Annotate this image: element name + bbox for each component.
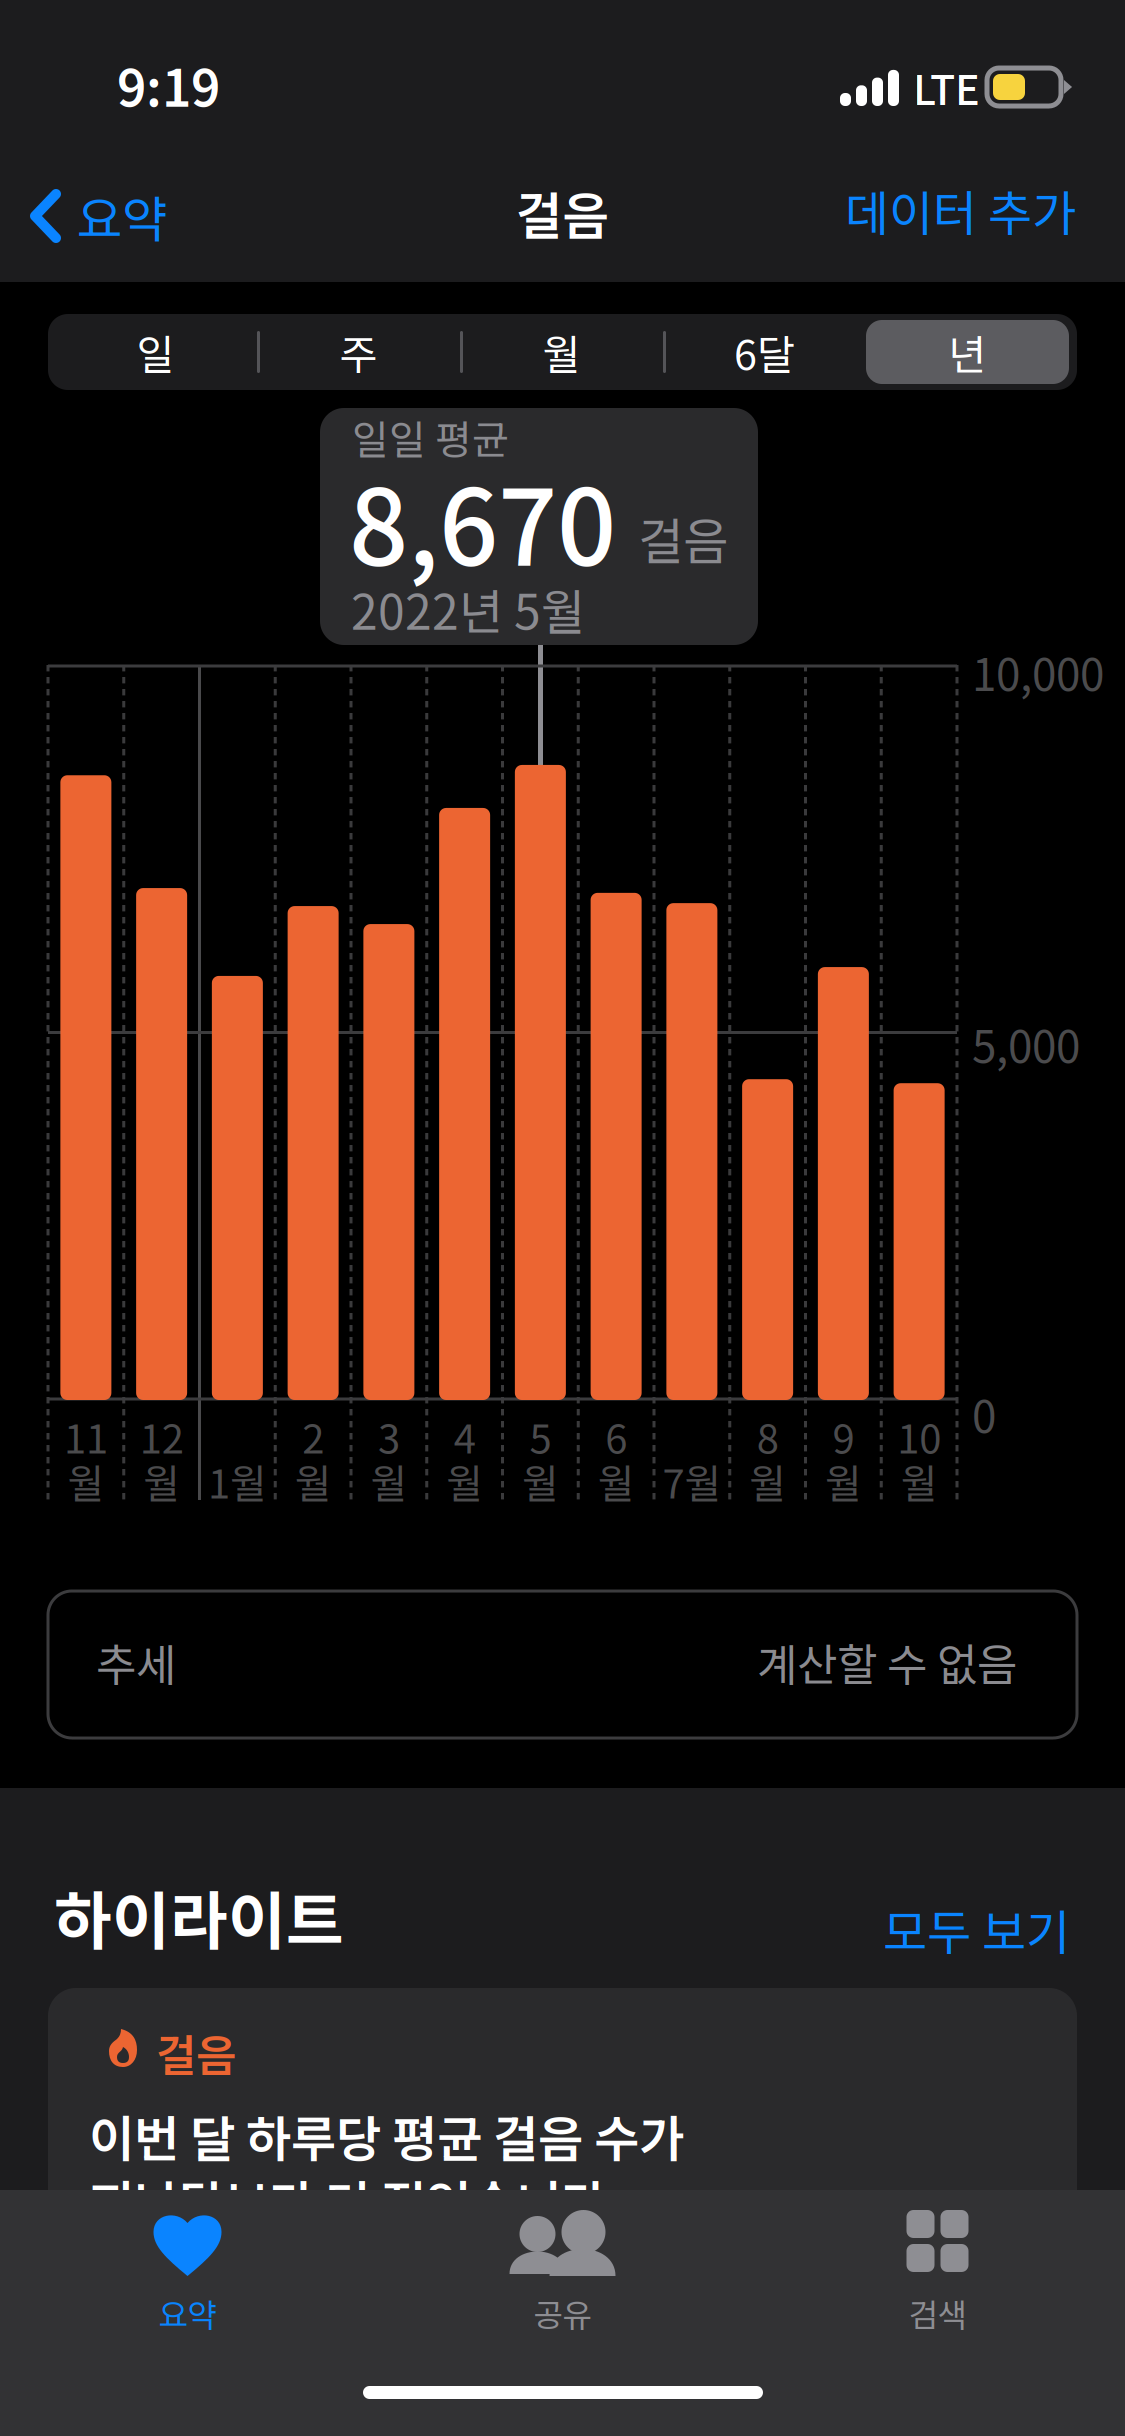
staticText: 월 bbox=[143, 1452, 180, 1510]
button[interactable]: 월 bbox=[460, 320, 663, 384]
staticText: 월 bbox=[825, 1452, 862, 1510]
staticText: 공유 bbox=[533, 2290, 591, 2336]
staticText: 11 bbox=[64, 1407, 108, 1465]
staticText: 월 bbox=[446, 1452, 483, 1510]
staticText: 9 bbox=[832, 1407, 854, 1465]
staticText: 2 bbox=[302, 1407, 324, 1465]
staticText: 일일 평균 bbox=[352, 408, 509, 466]
staticText: 일 bbox=[136, 322, 174, 382]
button[interactable]: 데이터 추가 bbox=[821, 160, 1100, 260]
staticText: 7월 bbox=[662, 1452, 721, 1510]
button[interactable]: 검색 bbox=[750, 2190, 1125, 2350]
staticText: 지난달보다 더 적었습니다. bbox=[89, 2165, 621, 2236]
staticText: 1월 bbox=[208, 1452, 267, 1510]
button[interactable]: 걸음 bbox=[48, 1988, 1077, 2318]
button[interactable]: 6달 bbox=[663, 320, 866, 384]
staticText: 2022년 5월 bbox=[351, 574, 585, 643]
staticText: 추세 bbox=[96, 1630, 176, 1694]
staticText: 6달 bbox=[734, 322, 795, 382]
staticText: 월 bbox=[542, 322, 580, 382]
staticText: 9:19 bbox=[117, 48, 220, 121]
staticText: 4 bbox=[454, 1407, 476, 1465]
staticText: 10,000 bbox=[972, 640, 1104, 704]
staticText: 6 bbox=[605, 1407, 627, 1465]
staticText: 월 bbox=[522, 1452, 559, 1510]
staticText: 걸음 bbox=[638, 502, 728, 573]
staticText: 년 bbox=[948, 322, 986, 382]
staticText: 월 bbox=[370, 1452, 407, 1510]
staticText: 모두 보기 bbox=[883, 1894, 1070, 1964]
staticText: 5,000 bbox=[972, 1012, 1080, 1076]
staticText: 3 bbox=[378, 1407, 400, 1465]
staticText: 5 bbox=[529, 1407, 551, 1465]
button[interactable]: 요약 bbox=[0, 2190, 375, 2350]
staticText: 월 bbox=[295, 1452, 332, 1510]
button[interactable]: 요약 bbox=[14, 166, 181, 266]
button[interactable]: 모두 보기 bbox=[859, 1884, 1094, 1974]
staticText: 요약 bbox=[158, 2290, 216, 2336]
staticText: 0 bbox=[972, 1382, 996, 1446]
staticText: 10 bbox=[897, 1407, 941, 1465]
staticText: 월 bbox=[67, 1452, 104, 1510]
staticText: 계산할 수 없음 bbox=[757, 1630, 1017, 1694]
staticText: 월 bbox=[901, 1452, 938, 1510]
button[interactable]: 주 bbox=[257, 320, 460, 384]
staticText: 데이터 추가 bbox=[845, 175, 1076, 245]
staticText: 월 bbox=[598, 1452, 635, 1510]
button[interactable]: 일 bbox=[54, 320, 257, 384]
staticText: 걸음 bbox=[515, 176, 609, 249]
staticText: 12 bbox=[140, 1407, 184, 1465]
staticText: 8,670 bbox=[349, 445, 616, 596]
staticText: LTE bbox=[913, 57, 980, 117]
staticText: 요약 bbox=[77, 180, 167, 252]
staticText: 주 bbox=[339, 322, 377, 382]
button[interactable]: 공유 bbox=[375, 2190, 750, 2350]
staticText: 8 bbox=[757, 1407, 779, 1465]
staticText: 월 bbox=[749, 1452, 786, 1510]
staticText: 걸음 bbox=[156, 2021, 236, 2085]
staticText: 검색 bbox=[908, 2290, 966, 2336]
staticText: 이번 달 하루당 평균 걸음 수가 bbox=[89, 2100, 684, 2171]
button[interactable]: 년 bbox=[866, 320, 1069, 384]
staticText: 하이라이트 bbox=[54, 1871, 344, 1962]
